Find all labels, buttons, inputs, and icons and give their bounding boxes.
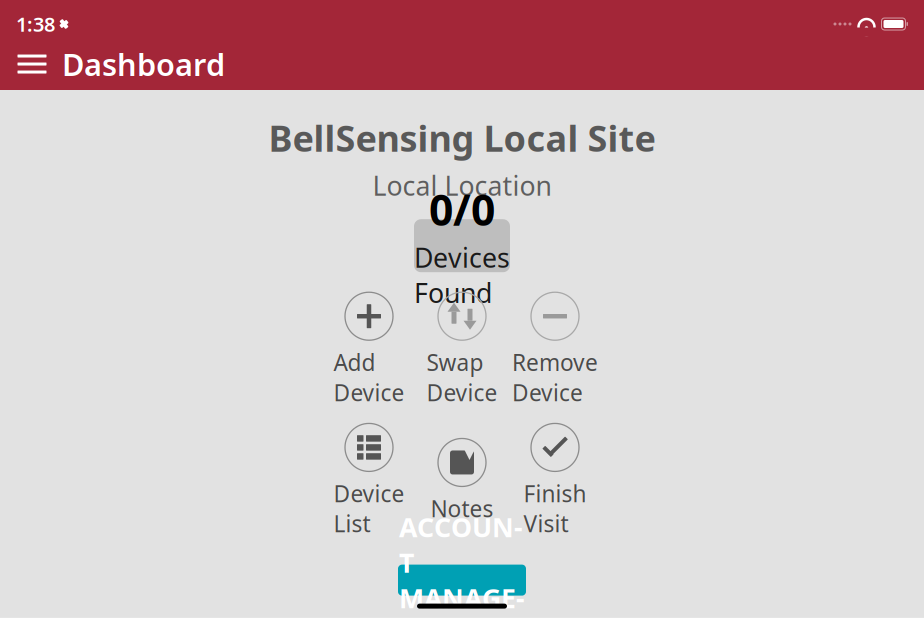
button[interactable]: Add Device bbox=[322, 292, 415, 407]
button[interactable]: Menu bbox=[10, 42, 54, 86]
staticText: Device List bbox=[333, 478, 404, 539]
staticText: Local Location bbox=[372, 168, 551, 203]
staticText: Add Device bbox=[333, 347, 404, 407]
button[interactable]: ACCOUNT MANAGER bbox=[398, 565, 526, 596]
staticText: Remove Device bbox=[512, 347, 598, 407]
button[interactable]: Notes bbox=[415, 438, 508, 524]
staticText: 0/0 bbox=[429, 181, 495, 238]
staticText: 1:38 bbox=[16, 11, 55, 37]
staticText: Devices Found bbox=[414, 240, 510, 310]
button[interactable]: Remove Device bbox=[508, 292, 601, 407]
staticText: ACCOUNT MANAGER bbox=[399, 509, 525, 618]
button[interactable]: Swap Device bbox=[415, 292, 508, 407]
staticText: Dashboard bbox=[62, 44, 225, 84]
staticText: Notes bbox=[430, 493, 493, 524]
staticText: Finish Visit bbox=[523, 478, 586, 539]
staticText: Swap Device bbox=[426, 347, 497, 407]
button[interactable]: Finish Visit bbox=[508, 423, 601, 539]
staticText: BellSensing Local Site bbox=[268, 114, 655, 162]
button[interactable]: Device List bbox=[322, 423, 415, 539]
